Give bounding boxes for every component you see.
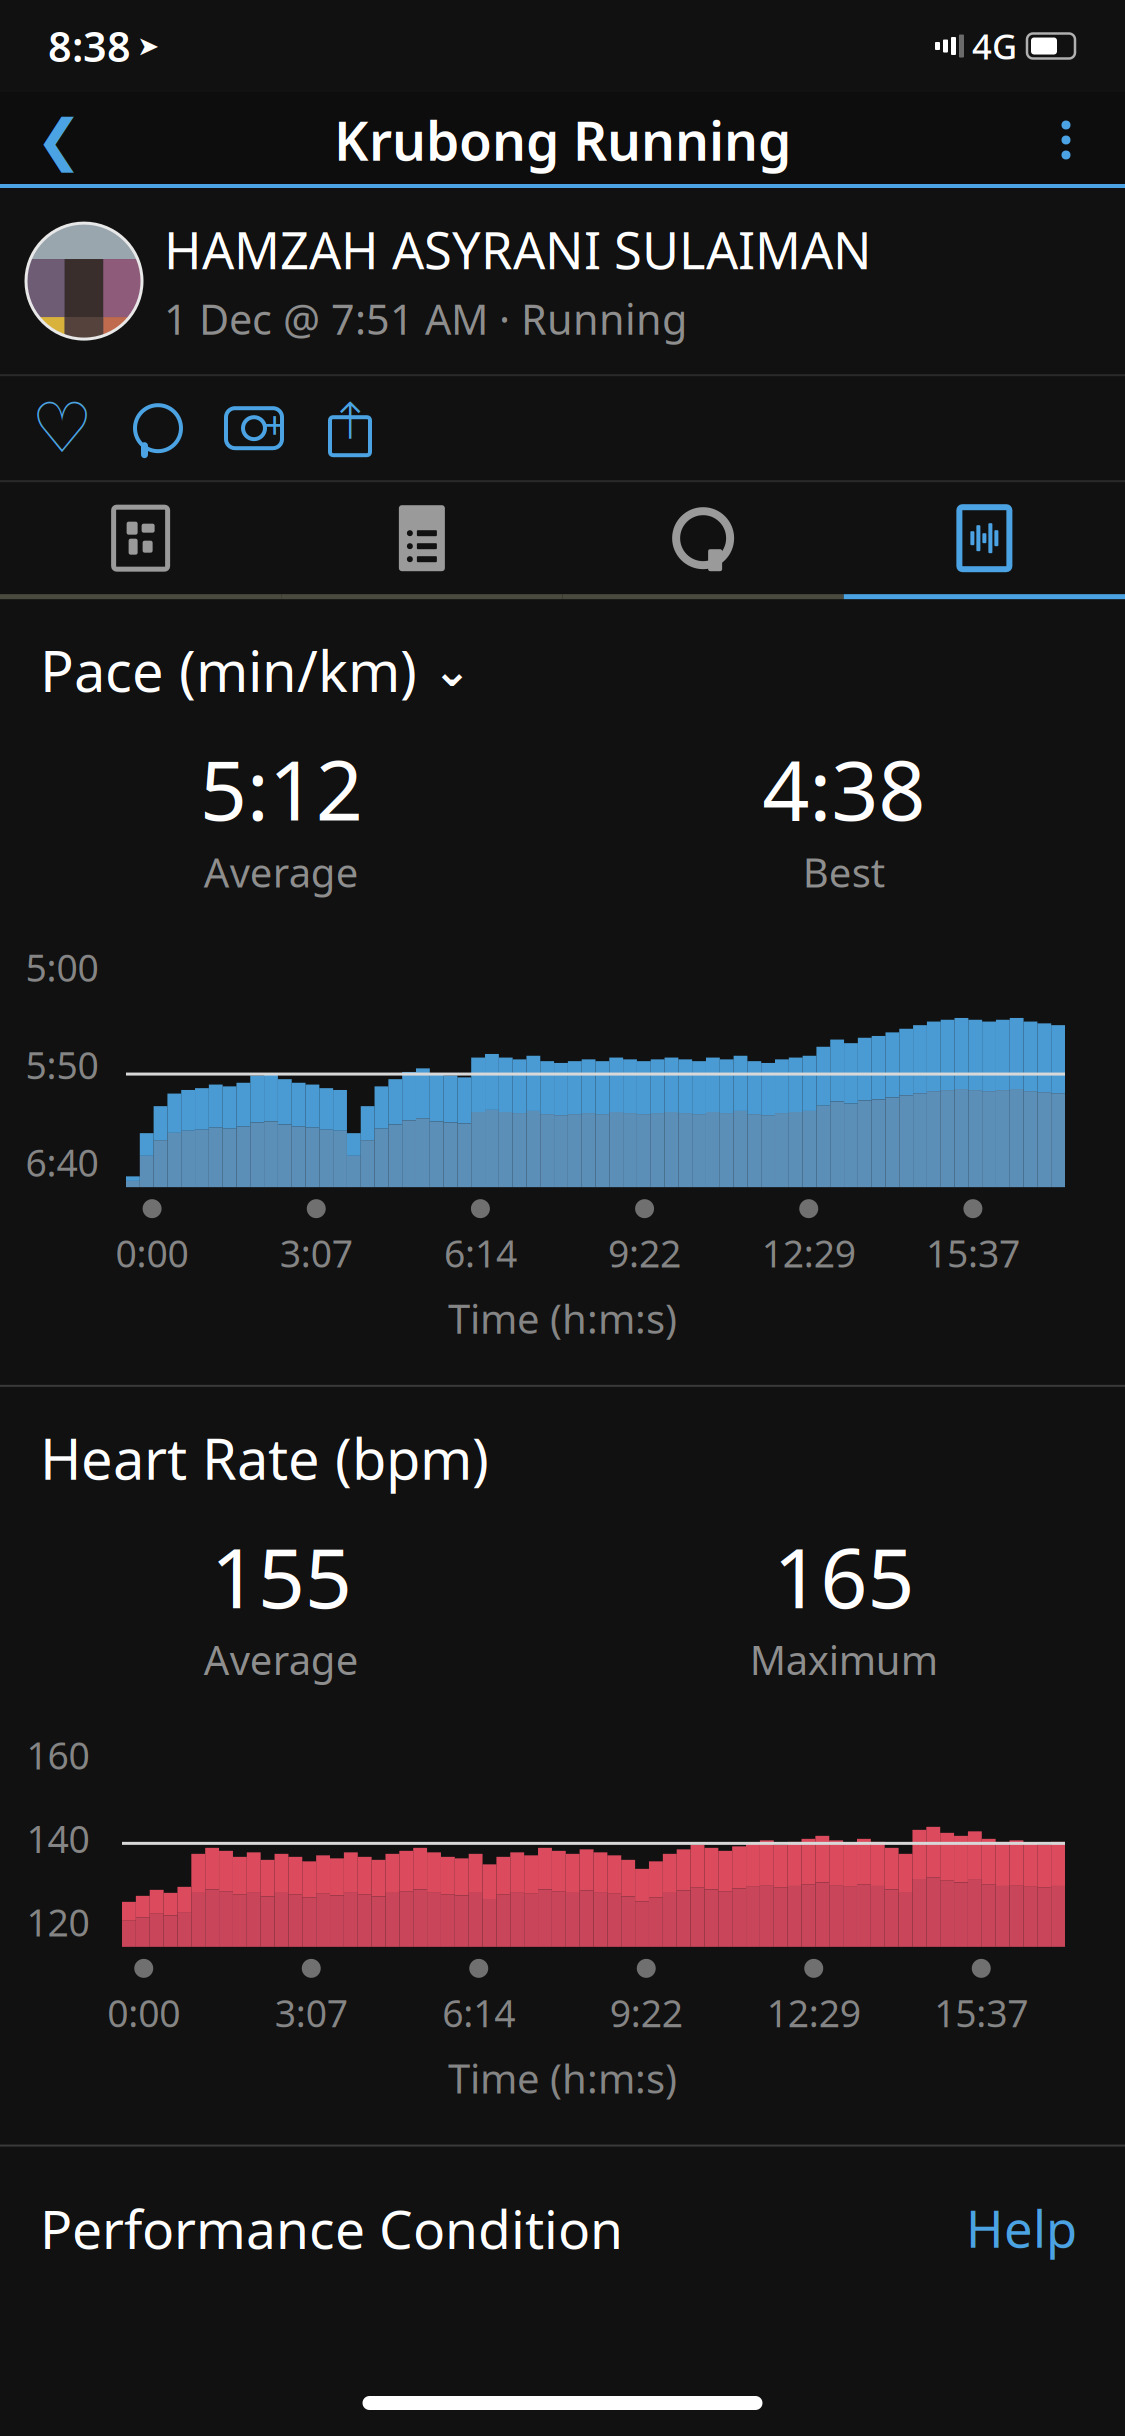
staticText: ❮ xyxy=(35,108,82,172)
staticText: Krubong Running xyxy=(334,105,791,175)
staticText: ⌄ xyxy=(433,645,471,696)
staticText: 6:40 xyxy=(25,1138,98,1187)
staticText: 140 xyxy=(26,1814,89,1863)
button[interactable]: More options xyxy=(1021,95,1111,185)
staticText: 1 Dec @ 7:51 AM · Running xyxy=(164,291,687,346)
staticText: 3:07 xyxy=(280,1228,353,1278)
staticText: Maximum xyxy=(750,1633,938,1686)
staticText: 4:38 xyxy=(762,733,925,843)
staticText: 165 xyxy=(773,1521,914,1631)
staticText: 6:14 xyxy=(444,1228,517,1278)
staticText: Average xyxy=(204,845,359,898)
staticText: 5:12 xyxy=(200,733,363,843)
button[interactable]: Like xyxy=(14,382,110,474)
staticText: 15:37 xyxy=(934,1988,1028,2037)
staticText: 8:38 xyxy=(48,19,131,73)
staticText: 120 xyxy=(26,1897,89,1947)
staticText: Best xyxy=(803,845,885,898)
staticText: + xyxy=(264,399,285,449)
staticText: Average xyxy=(204,1633,359,1686)
button[interactable]: HAMZAH ASYRANI SULAIMAN xyxy=(0,188,1125,374)
staticText: 0:00 xyxy=(116,1228,189,1278)
staticText: Help xyxy=(966,2195,1077,2262)
button[interactable]: Details xyxy=(281,482,562,594)
staticText: HAMZAH ASYRANI SULAIMAN xyxy=(164,216,872,283)
staticText: Time (h:m:s) xyxy=(448,2051,677,2104)
button[interactable]: Add photo xyxy=(206,382,302,474)
staticText: Pace (min/km) xyxy=(40,633,417,708)
staticText: 155 xyxy=(211,1521,352,1631)
staticText: Heart Rate (bpm) xyxy=(40,1421,489,1495)
staticText: ↑ xyxy=(329,392,371,450)
staticText: 12:29 xyxy=(767,1988,861,2037)
staticText: Time (h:m:s) xyxy=(448,1292,677,1345)
staticText: 9:22 xyxy=(608,1228,681,1278)
staticText: 5:00 xyxy=(25,942,98,992)
staticText: 6:14 xyxy=(442,1988,515,2037)
button[interactable]: Share xyxy=(302,382,398,474)
staticText: 9:22 xyxy=(610,1988,683,2037)
staticText: 5:50 xyxy=(25,1040,98,1090)
button[interactable]: Pace (min/km) xyxy=(0,599,1125,708)
staticText: Performance Condition xyxy=(40,2193,623,2264)
staticText: ➤ xyxy=(137,31,159,61)
staticText: 0:00 xyxy=(107,1988,180,2037)
button[interactable]: Back xyxy=(14,95,104,185)
button[interactable]: Laps xyxy=(562,482,844,594)
staticText: 3:07 xyxy=(275,1988,348,2037)
staticText: 15:37 xyxy=(926,1228,1020,1278)
button[interactable]: Map xyxy=(0,482,281,594)
button[interactable]: Charts xyxy=(844,482,1125,594)
button[interactable]: Comment xyxy=(110,382,206,474)
staticText: ♡ xyxy=(31,389,93,467)
staticText: 160 xyxy=(26,1730,89,1780)
button[interactable]: Help xyxy=(958,2183,1085,2274)
staticText: 4G xyxy=(972,23,1017,69)
staticText: 12:29 xyxy=(762,1228,856,1278)
